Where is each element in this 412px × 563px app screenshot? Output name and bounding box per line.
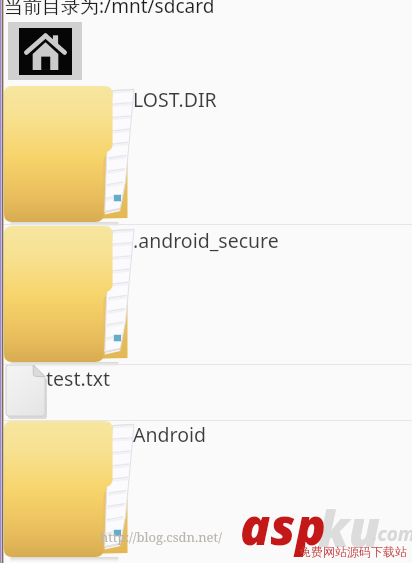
staticText: ku xyxy=(318,494,380,562)
staticText: .com xyxy=(372,521,412,547)
button[interactable]: Home xyxy=(8,22,82,80)
staticText: asp xyxy=(240,492,326,560)
button[interactable] xyxy=(0,225,412,364)
staticText: Android xyxy=(133,421,206,448)
staticText: http://blog.csdn.net/ xyxy=(100,528,222,546)
staticText: .android_secure xyxy=(133,227,279,254)
staticText: test.txt xyxy=(46,365,111,392)
button[interactable] xyxy=(0,421,412,563)
button[interactable] xyxy=(0,84,412,224)
staticText: 当前目录为:/mnt/sdcard xyxy=(4,0,215,19)
staticText: LOST.DIR xyxy=(133,86,217,113)
staticText: 免费网站源码下载站 xyxy=(299,544,407,559)
button[interactable] xyxy=(0,365,412,420)
